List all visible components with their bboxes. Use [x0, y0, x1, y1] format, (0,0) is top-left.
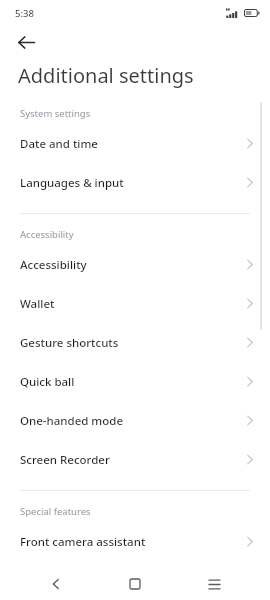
staticText: Additional settings [18, 62, 194, 89]
button[interactable]: Languages & input [0, 163, 270, 202]
staticText: Accessibility [20, 257, 247, 273]
button[interactable]: One-handed mode [0, 401, 270, 440]
staticText: Wallet [20, 296, 247, 312]
staticText: Accessibility [20, 228, 74, 241]
staticText: One-handed mode [20, 413, 247, 429]
button[interactable]: Screen Recorder [0, 440, 270, 479]
staticText: Quick ball [20, 374, 247, 390]
staticText: Front camera assistant [20, 534, 247, 550]
staticText: Languages & input [20, 175, 247, 191]
button[interactable]: Recent apps [198, 568, 230, 600]
staticText: Date and time [20, 136, 247, 152]
button[interactable]: Back [40, 568, 72, 600]
button[interactable]: Front camera assistant [0, 522, 270, 561]
staticText: Gesture shortcuts [20, 335, 247, 351]
button[interactable]: Wallet [0, 284, 270, 323]
staticText: Special features [20, 505, 91, 518]
button[interactable]: Back [9, 26, 43, 58]
button[interactable]: Quick ball [0, 362, 270, 401]
button[interactable]: Gesture shortcuts [0, 323, 270, 362]
staticText: 5:38 [15, 7, 34, 20]
button[interactable]: Date and time [0, 124, 270, 163]
staticText: System settings [20, 107, 91, 120]
staticText: Screen Recorder [20, 452, 247, 468]
button[interactable]: Home [119, 568, 151, 600]
button[interactable]: Accessibility [0, 245, 270, 284]
